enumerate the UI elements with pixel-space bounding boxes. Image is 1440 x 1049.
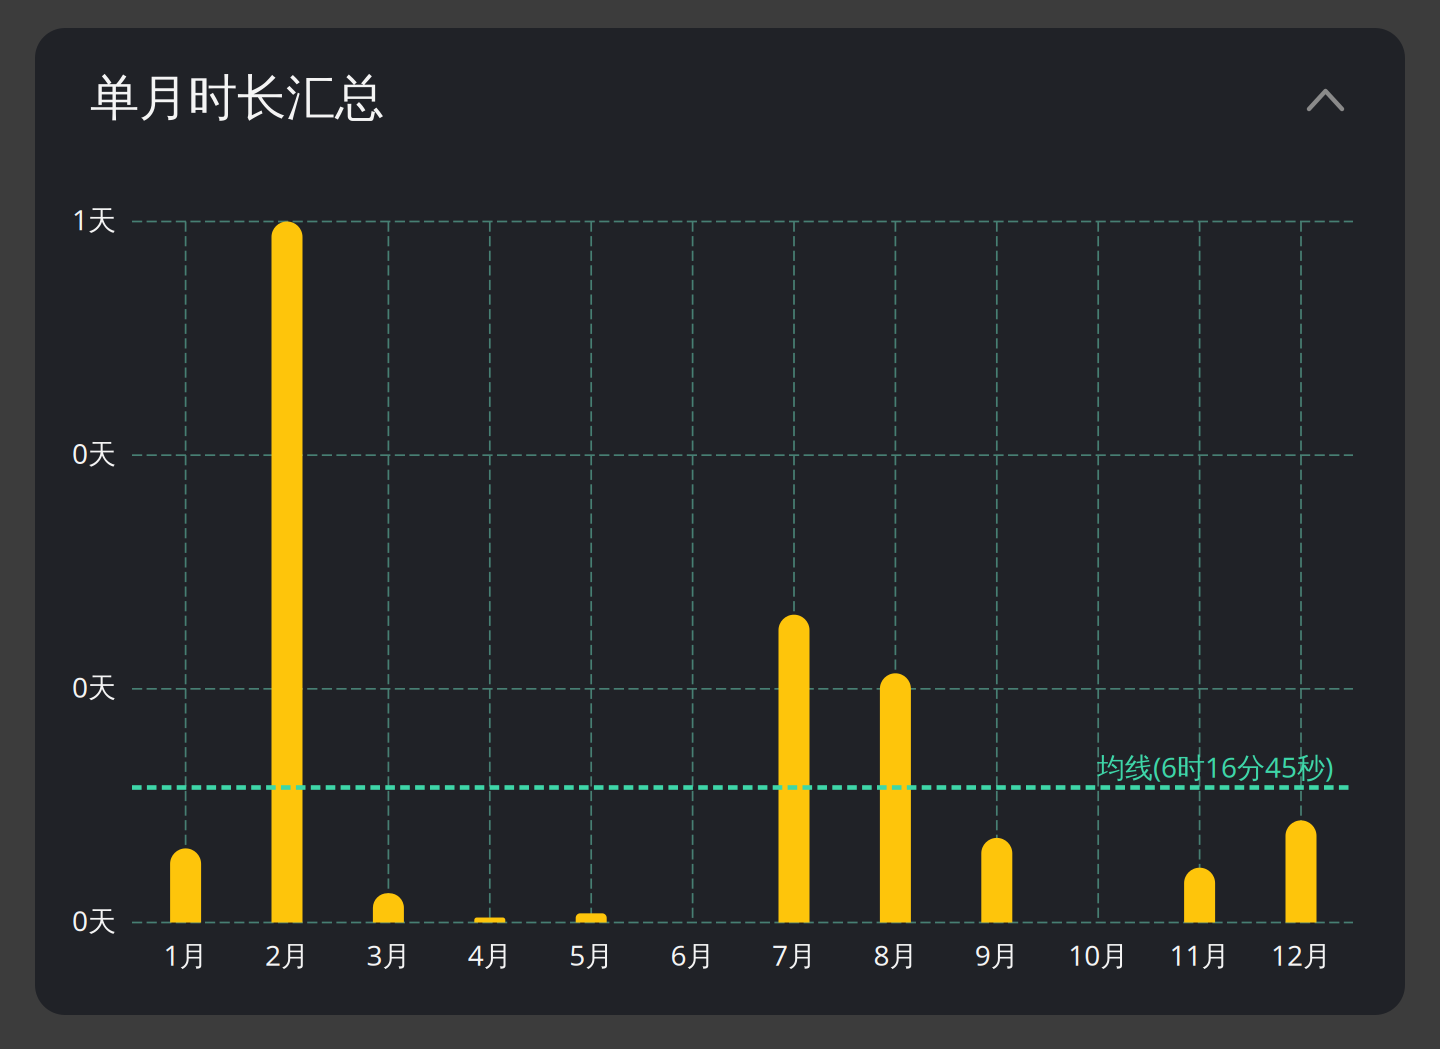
staticText: 10月 [1068,936,1128,974]
staticText: 5月 [569,936,613,974]
staticText: 2月 [265,936,309,974]
staticText: 11月 [1170,936,1230,974]
staticText: 8月 [873,936,917,974]
staticText: 0天 [72,668,116,705]
staticText: 0天 [72,435,116,472]
staticText: 均线(6时16分45秒) [1097,748,1333,786]
staticText: 9月 [975,936,1019,974]
staticText: 单月时长汇总 [90,68,384,128]
staticText: 3月 [366,936,410,974]
staticText: 1天 [72,201,116,238]
staticText: 6月 [671,936,715,974]
staticText: 12月 [1271,936,1331,974]
staticText: 7月 [772,936,816,974]
staticText: 4月 [468,936,512,974]
staticText: 1月 [164,936,208,974]
button[interactable]: 收起单月时长汇总 [1293,75,1358,125]
staticText: 0天 [72,902,116,939]
